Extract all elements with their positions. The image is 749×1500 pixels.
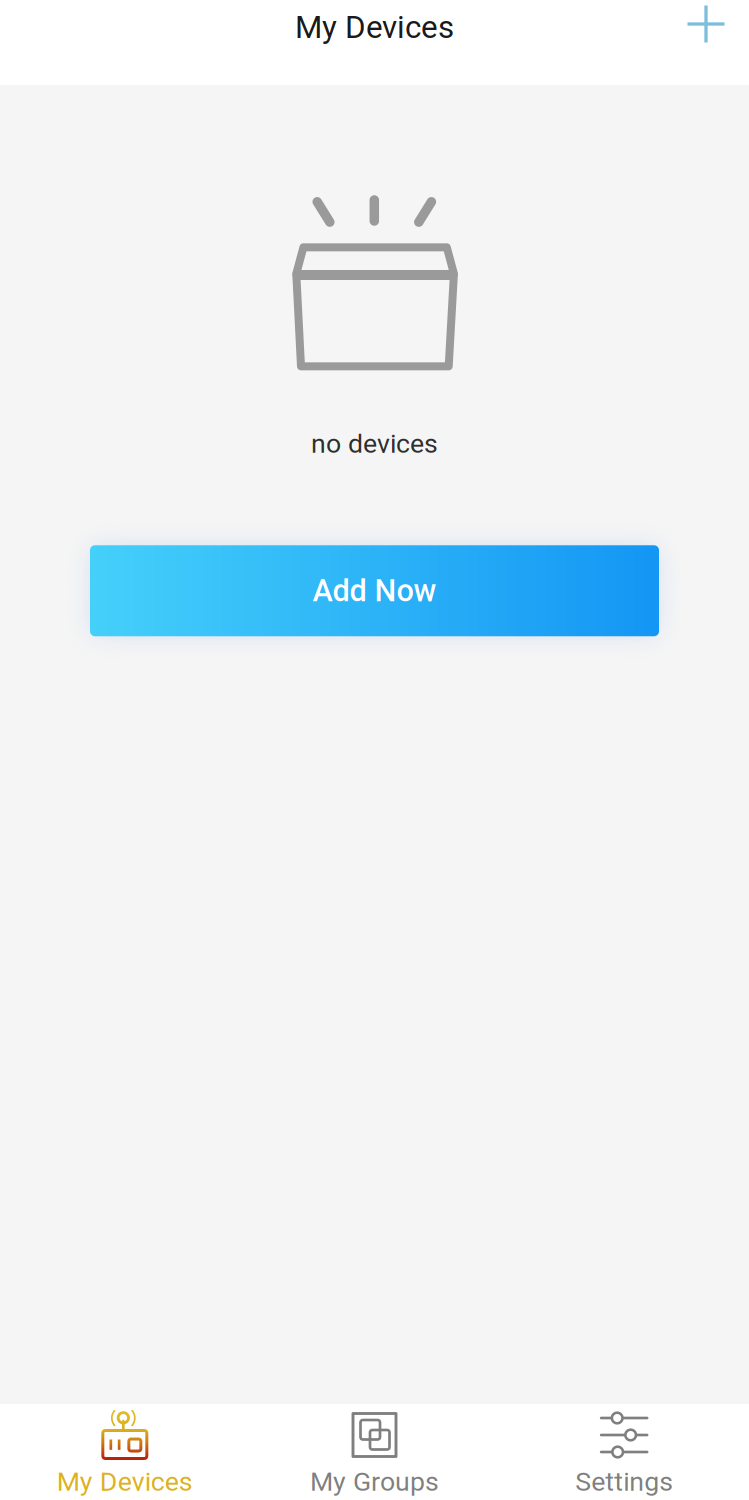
button[interactable]: Add Now xyxy=(90,545,659,636)
button[interactable]: My Devices xyxy=(0,1404,250,1500)
button[interactable]: Settings xyxy=(499,1404,749,1500)
staticText: Settings xyxy=(575,1466,673,1497)
staticText: My Devices xyxy=(57,1466,193,1497)
staticText: no devices xyxy=(311,428,438,459)
staticText: My Devices xyxy=(295,9,454,46)
button[interactable]: My Groups xyxy=(250,1404,499,1500)
button[interactable]: Add device xyxy=(684,2,749,46)
staticText: My Groups xyxy=(310,1466,439,1497)
staticText: Add Now xyxy=(312,573,436,609)
